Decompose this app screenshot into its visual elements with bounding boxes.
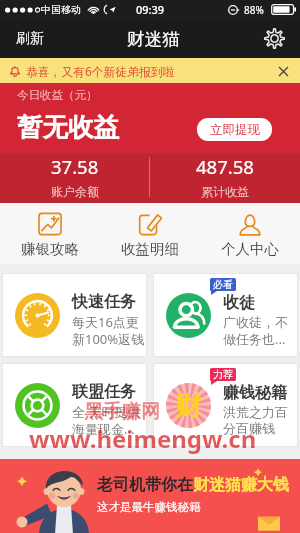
staticText: 刷新 xyxy=(16,30,44,48)
staticText: 这才是最牛赚钱秘籍 xyxy=(97,500,201,514)
button[interactable]: 设置 xyxy=(254,19,300,58)
staticText: 中国移动 xyxy=(41,3,81,16)
staticText: 洪荒之力百 分百赚钱 xyxy=(223,404,288,437)
button[interactable]: 财 xyxy=(153,363,298,447)
staticText: 09:39 xyxy=(136,2,165,17)
staticText: 立即提现 xyxy=(210,122,260,138)
staticText: 联盟任务 xyxy=(72,382,136,402)
staticText: 广收徒，不 做任务也... xyxy=(223,314,288,348)
staticText: 88% xyxy=(244,3,264,17)
button[interactable]: 快速任务 xyxy=(2,273,147,357)
staticText: 收益明细 xyxy=(121,240,179,258)
staticText: 账户余额 xyxy=(51,184,99,199)
button[interactable]: 刷新 xyxy=(0,19,54,58)
button[interactable]: 恭喜，又有6个新徒弟报到啦 xyxy=(0,58,300,83)
staticText: 赚银攻略 xyxy=(21,240,79,258)
staticText: 财 xyxy=(175,389,202,423)
staticText: 必看 xyxy=(213,278,233,291)
staticText: 暂无收益 xyxy=(17,111,119,143)
staticText: 个人中心 xyxy=(221,240,279,258)
staticText: 累计收益 xyxy=(201,184,249,199)
button[interactable]: 个人中心 xyxy=(200,203,300,264)
staticText: 力荐 xyxy=(213,368,233,381)
staticText: 黑手赚网 xyxy=(84,400,160,424)
button[interactable]: 赚银攻略 xyxy=(0,203,100,264)
button[interactable]: 收徒 xyxy=(153,273,298,357)
staticText: 赚钱秘籍 xyxy=(223,383,287,403)
staticText: 今日收益（元） xyxy=(17,88,98,102)
staticText: 快速任务 xyxy=(72,292,136,312)
staticText: 恭喜，又有6个新徒弟报到啦 xyxy=(26,63,175,79)
button[interactable]: 收益明细 xyxy=(100,203,200,264)
staticText: 收徒 xyxy=(223,293,255,313)
staticText: 487.58 xyxy=(196,154,254,179)
button[interactable]: 老司机带你在 xyxy=(0,459,300,533)
staticText: www.heimengw.cn xyxy=(29,422,257,455)
staticText: 37.58 xyxy=(51,154,99,179)
button[interactable]: 立即提现 xyxy=(197,118,272,141)
staticText: 财迷猫赚大钱 xyxy=(193,475,289,495)
button[interactable]: 联盟任务 xyxy=(2,363,147,447)
staticText: 全 天时提供 海量现金... xyxy=(72,403,141,438)
staticText: 每天16点更 新100%返钱 xyxy=(72,313,145,348)
staticText: 老司机带你在 xyxy=(97,475,193,495)
button[interactable]: 关闭 xyxy=(274,62,292,80)
staticText: 财迷猫 xyxy=(127,28,180,50)
